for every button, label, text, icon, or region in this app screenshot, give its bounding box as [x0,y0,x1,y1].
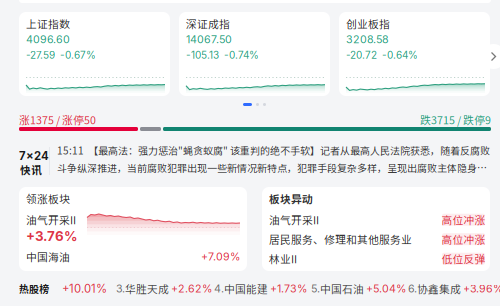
staticText: 低位反弹 [441,251,485,266]
staticText: 中国海油 [26,249,70,264]
staticText: 高位冲涨 [441,231,485,247]
staticText: 华胜天成 [125,281,169,296]
staticText: +3.76% [26,228,78,244]
staticText: 协鑫集成 [417,281,461,296]
button[interactable]: 板块异动 [262,187,490,271]
staticText: 林业II [269,251,297,266]
staticText: 跌3715 / 跌停9 [420,112,491,127]
button[interactable]: 热股榜 [19,281,49,296]
staticText: 深证成指 [186,16,230,31]
staticText: 上证指数 [26,16,70,31]
staticText: +5.04% [366,282,406,295]
staticText: 热股榜 [19,281,49,296]
staticText: 高位冲涨 [441,212,485,227]
staticText: +3.96% [463,282,500,295]
staticText: +7.09% [201,250,240,263]
staticText: 油气开采II [26,212,76,227]
staticText: 创业板指 [346,16,390,31]
staticText: 快讯 [20,162,42,177]
staticText: -27.59 [26,49,55,61]
staticText: 3. [116,282,125,295]
staticText: 5. [311,282,320,295]
staticText: 涨1375 / 涨停50 [19,112,96,127]
staticText: +2.62% [171,282,212,295]
button[interactable]: 6. [408,281,500,296]
staticText: 油气开采II [269,212,319,227]
button[interactable]: 领涨板块 [19,187,247,271]
button[interactable]: 7x24 [19,142,491,178]
staticText: 7x24 [19,149,49,163]
staticText: +1.73% [270,282,307,295]
button[interactable]: 3. [116,281,212,296]
button[interactable]: 5. [311,281,406,296]
staticText: -0.67% [60,49,96,61]
staticText: 4096.60 [26,33,70,46]
staticText: 板块异动 [269,191,313,206]
staticText: 14067.50 [186,33,232,46]
button[interactable]: 4. [214,281,307,296]
staticText: 中国石油 [320,281,364,296]
staticText: -0.64% [382,49,418,61]
button[interactable]: 创业板指 [339,12,490,96]
staticText: 中国能建 [224,281,268,296]
button[interactable]: 下一页 [481,44,500,69]
button[interactable]: 上证指数 [19,12,170,96]
staticText: +10.01% [62,282,107,296]
staticText: -20.72 [346,49,377,61]
staticText: -0.74% [224,49,259,61]
button[interactable]: 深证成指 [179,12,330,96]
staticText: -105.13 [186,49,219,61]
staticText: 3208.58 [346,33,389,46]
staticText: 领涨板块 [26,191,70,206]
staticText: 居民服务、修理和其他服务业 [269,231,412,247]
staticText: 4. [214,282,224,295]
staticText: 15:11 【最高法：强力惩治"蝇贪蚁腐" 该重判的绝不手软】记者从最高人民法院… [57,143,490,175]
staticText: 6. [408,282,417,295]
